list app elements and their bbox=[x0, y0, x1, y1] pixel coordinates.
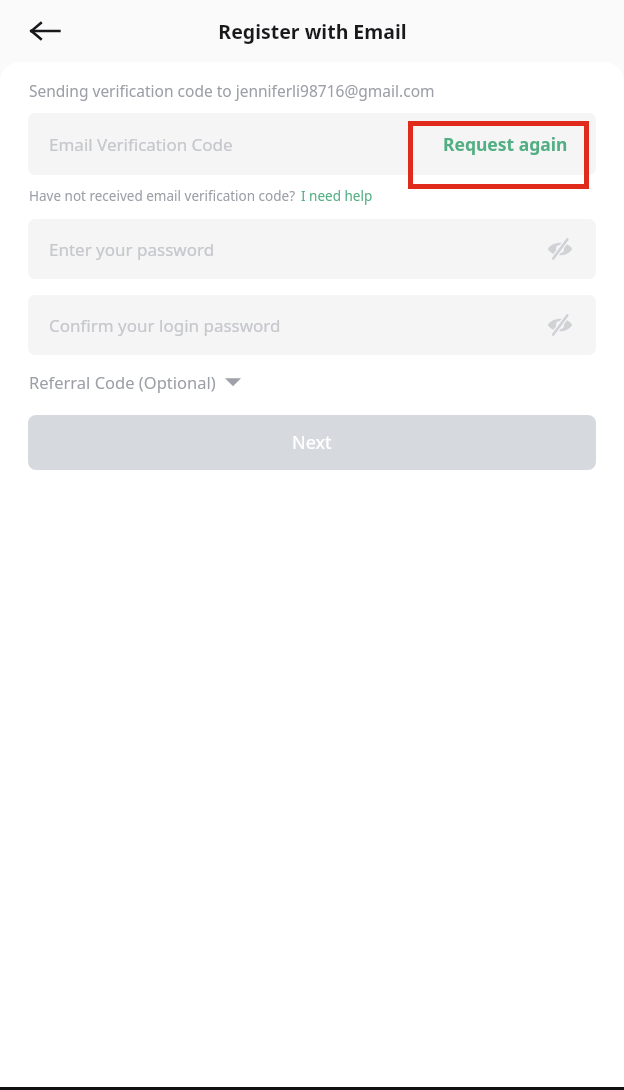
button[interactable]: Email Verification Code bbox=[28, 113, 406, 175]
staticText: Register with Email bbox=[218, 18, 407, 45]
button[interactable]: Next bbox=[28, 415, 596, 470]
staticText: I need help bbox=[301, 187, 373, 205]
staticText: Confirm your login password bbox=[49, 314, 281, 337]
staticText: Request again bbox=[443, 132, 568, 156]
button[interactable]: Enter your password bbox=[28, 219, 596, 279]
button[interactable]: I need help bbox=[301, 187, 373, 205]
button[interactable]: Back bbox=[22, 8, 68, 54]
staticText: Sending verification code to jenniferli9… bbox=[29, 80, 435, 101]
staticText: Have not received email verification cod… bbox=[29, 187, 296, 205]
staticText: Email Verification Code bbox=[49, 133, 233, 156]
button[interactable]: Show password bbox=[538, 227, 582, 271]
staticText: Referral Code (Optional) bbox=[29, 371, 216, 393]
button[interactable]: Referral Code (Optional) bbox=[29, 371, 241, 393]
staticText: Enter your password bbox=[49, 238, 215, 261]
button[interactable]: Show confirm password bbox=[538, 303, 582, 347]
button[interactable]: Confirm your login password bbox=[28, 295, 596, 355]
button[interactable]: Request again bbox=[414, 113, 596, 175]
staticText: Next bbox=[292, 430, 332, 455]
